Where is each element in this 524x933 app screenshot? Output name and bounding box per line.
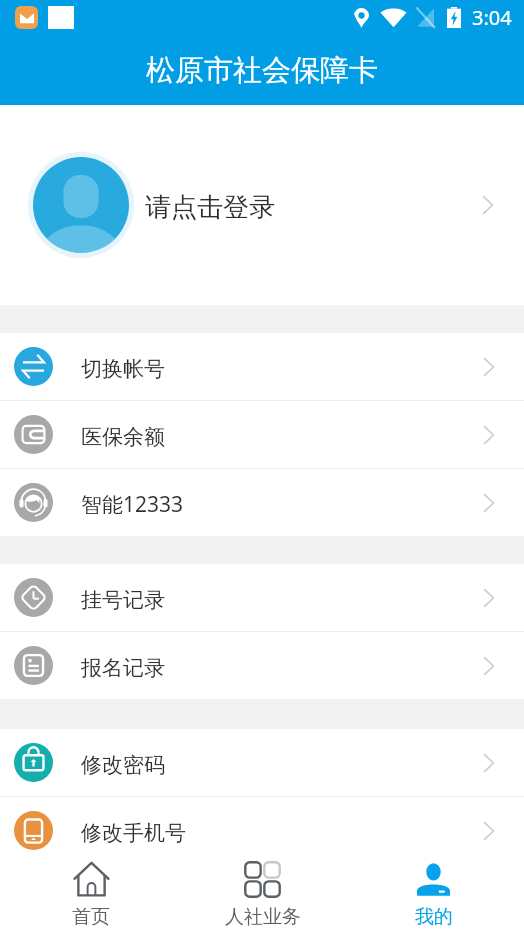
button[interactable]: 医保余额 (0, 401, 524, 468)
button[interactable]: 人社业务 (177, 852, 348, 933)
staticText: 3:04 (472, 4, 512, 31)
button[interactable]: 报名记录 (0, 632, 524, 699)
button[interactable]: 修改手机号 (0, 797, 524, 864)
button[interactable]: 请点击登录 (0, 105, 524, 305)
staticText: 请点击登录 (145, 191, 275, 224)
button[interactable]: 挂号记录 (0, 564, 524, 631)
staticText: 挂号记录 (81, 587, 165, 613)
staticText: 我的 (415, 905, 453, 929)
staticText: 切换帐号 (81, 356, 165, 382)
staticText: 首页 (72, 905, 110, 929)
button[interactable]: 首页 (5, 852, 177, 933)
staticText: 修改密码 (81, 752, 165, 778)
staticText: 松原市社会保障卡 (146, 52, 378, 89)
button[interactable]: 切换帐号 (0, 333, 524, 400)
staticText: 医保余额 (81, 424, 165, 450)
staticText: 人社业务 (225, 905, 301, 929)
staticText: 修改手机号 (81, 820, 186, 846)
staticText: 报名记录 (81, 655, 165, 681)
button[interactable]: 我的 (348, 852, 519, 933)
button[interactable]: 修改密码 (0, 729, 524, 796)
staticText: 智能12333 (81, 490, 184, 519)
button[interactable]: 智能12333 (0, 469, 524, 536)
